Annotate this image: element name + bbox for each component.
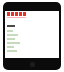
other: Home bbox=[30, 62, 35, 67]
